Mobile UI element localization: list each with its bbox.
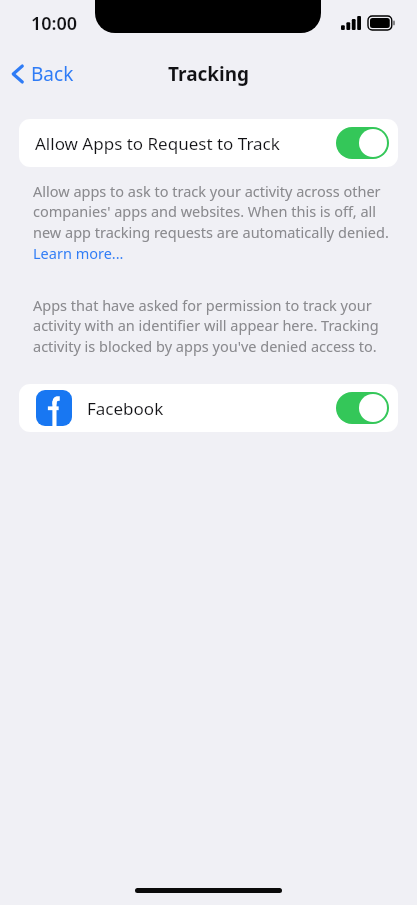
- button[interactable]: Back: [0, 55, 86, 93]
- staticText: Facebook: [87, 397, 164, 420]
- staticText: Tracking: [168, 61, 250, 87]
- staticText: Allow Apps to Request to Track: [35, 132, 280, 155]
- button[interactable]: Allow Apps to Request to Track: [19, 119, 398, 167]
- staticText: 10:00: [31, 11, 78, 36]
- button[interactable]: Toggle tracking permission: [336, 392, 389, 424]
- button[interactable]: Toggle tracking permission: [336, 127, 389, 159]
- staticText: Allow apps to ask to track your activity…: [33, 181, 389, 264]
- button[interactable]: Facebook: [19, 384, 398, 432]
- staticText: Back: [31, 61, 74, 87]
- staticText: Apps that have asked for permission to t…: [33, 295, 389, 357]
